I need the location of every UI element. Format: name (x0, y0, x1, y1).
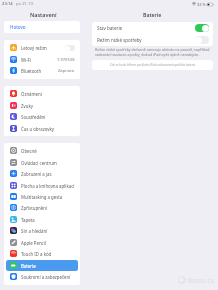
button[interactable]: Hotovo (4, 21, 80, 33)
staticText: Bazos.cz (188, 276, 214, 284)
button[interactable]: Zpřístupnění (6, 202, 78, 213)
staticText: Hotovo (10, 24, 26, 30)
button[interactable]: Oznámení (6, 88, 78, 99)
staticText: Touch ID a kód (21, 251, 52, 257)
staticText: Obecné (21, 148, 37, 154)
staticText: Baterie (21, 263, 36, 269)
staticText: Multitasking a gesta (21, 194, 63, 200)
staticText: Oznámení (21, 91, 42, 97)
staticText: Ovládací centrum (21, 160, 57, 166)
button[interactable]: Zobrazení a jas (6, 168, 78, 179)
staticText: Zapnuto (58, 68, 75, 74)
staticText: Soustředění (21, 114, 46, 120)
button[interactable]: Tapeta (6, 214, 78, 225)
button[interactable]: Siri a hledání (6, 225, 78, 236)
button[interactable]: Stav baterie (92, 22, 213, 34)
staticText: Zvuky (21, 103, 33, 109)
staticText: Stav baterie (97, 25, 123, 31)
button[interactable]: Režim nízké spotřeby (195, 36, 209, 44)
button[interactable]: Zvuky (6, 100, 78, 111)
staticText: 23:14 (2, 1, 13, 7)
staticText: Nastavení (30, 11, 57, 18)
staticText: Apple Pencil (21, 240, 46, 246)
staticText: T-970538 (57, 57, 75, 63)
button[interactable]: Letový režim (6, 42, 78, 53)
staticText: Bluetooth (21, 68, 42, 74)
button[interactable]: Režim nízké spotřeby (92, 34, 213, 46)
button[interactable]: Plocha a knihovna aplikací (6, 180, 78, 191)
staticText: Baterie (143, 11, 162, 18)
staticText: Wi-Fi (21, 57, 31, 63)
button[interactable]: Touch ID a kód (6, 248, 78, 259)
button[interactable]: Baterie (6, 260, 78, 271)
button[interactable]: Soustředění (6, 111, 78, 122)
staticText: Zde se bude během používání iPadu zobraz… (110, 63, 196, 67)
button[interactable]: Čas u obrazovky (6, 123, 78, 134)
button[interactable]: Obecné (6, 145, 78, 156)
staticText: Siri a hledání (21, 228, 48, 234)
staticText: Zpřístupnění (21, 205, 48, 211)
button[interactable]: Wi-Fi (6, 54, 78, 65)
button[interactable]: Apple Pencil (6, 237, 78, 248)
button[interactable]: Ovládací centrum (6, 157, 78, 168)
staticText: Zobrazení a jas (21, 171, 52, 177)
staticText: Režim nízké spotřeby (97, 37, 142, 43)
button[interactable]: Stav baterie (195, 24, 209, 32)
staticText: Letový režim (21, 45, 47, 51)
staticText: Režim nízké spotřeby dočasně omezuje akt… (95, 47, 210, 57)
staticText: 33 % (197, 2, 206, 7)
staticText: po 21.10. (16, 1, 35, 7)
button[interactable]: Multitasking a gesta (6, 191, 78, 202)
staticText: Plocha a knihovna aplikací (21, 183, 75, 189)
button[interactable]: Soukromí a zabezpečení (6, 271, 78, 282)
button[interactable]: Letový režim (65, 45, 75, 51)
staticText: Čas u obrazovky (21, 126, 54, 132)
staticText: Tapeta (21, 217, 35, 223)
button[interactable]: Bluetooth (6, 65, 78, 76)
staticText: Soukromí a zabezpečení (21, 274, 71, 280)
